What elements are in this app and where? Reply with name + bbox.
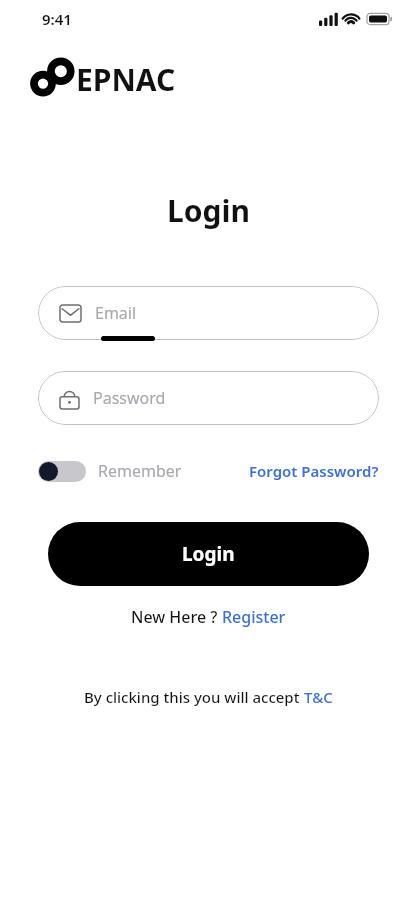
button[interactable]: Register (222, 606, 286, 628)
staticText: 9:41 (42, 9, 72, 29)
button[interactable]: Remember (38, 460, 182, 482)
staticText: Remember (98, 460, 182, 482)
button[interactable]: Login (48, 522, 369, 586)
button[interactable]: EPNAC (30, 56, 176, 102)
staticText: Password (93, 387, 166, 409)
staticText: Login (182, 541, 235, 567)
staticText: EPNAC (76, 59, 176, 100)
button[interactable]: T&C (304, 687, 333, 707)
staticText: Forgot Password? (249, 461, 379, 481)
staticText: T&C (304, 687, 333, 707)
staticText: New Here ? (131, 606, 222, 628)
staticText: By clicking this you will accept (84, 687, 304, 707)
button[interactable]: Forgot Password? (249, 461, 379, 481)
staticText: Login (167, 190, 250, 231)
staticText: Email (95, 302, 137, 324)
button[interactable]: Password (38, 371, 379, 425)
staticText: Register (222, 606, 286, 628)
button[interactable]: Email (38, 286, 379, 340)
